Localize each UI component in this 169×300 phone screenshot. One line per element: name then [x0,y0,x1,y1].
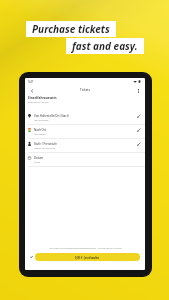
button[interactable]: 0,00 € · Jetzt kaufen [35,253,140,261]
button[interactable]: Edit [136,127,142,133]
staticText: fast and easy. [72,39,138,53]
button[interactable]: Nach Ort [25,125,145,139]
staticText: Wählen Sie eine Stufe [34,147,56,150]
staticText: Stufe / Preisstufe [34,142,57,146]
staticText: Tickets [80,88,90,92]
button[interactable]: Edit [136,141,142,147]
button[interactable]: Stufe / Preisstufe [25,139,145,153]
button[interactable]: Datum [25,153,145,167]
staticText: 9:41 [28,80,34,84]
button[interactable]: Edit [136,113,142,119]
staticText: Heute [34,161,40,164]
staticText: Hier eintragen [34,119,49,122]
button[interactable]: More options [134,86,143,95]
staticText: Datum [34,156,44,160]
button[interactable]: Back [27,86,36,95]
button[interactable]: Von Haltestelle/Ort (Start) [25,111,145,125]
staticText: Von Haltestelle/Ort (Start) [34,114,69,118]
staticText: Einzelfahrausweis [28,96,57,100]
staticText: Nach Ort [34,128,47,132]
staticText: Purchase tickets [32,22,110,36]
staticText: 0,00 € · Jetzt kaufen [75,256,100,259]
button[interactable]: Accept terms [29,254,34,260]
staticText: Hier finden Sie unsere Beförderungsbedin… [49,247,122,250]
staticText: Hier wählen [34,133,46,136]
staticText: Bitte wählen Sie aus [28,101,49,104]
